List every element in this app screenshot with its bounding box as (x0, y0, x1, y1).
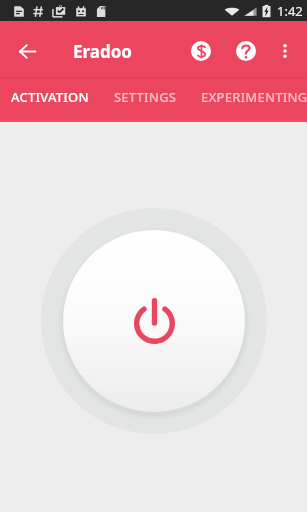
button[interactable]: SETTINGS (100, 77, 191, 117)
button[interactable]: EXPERIMENTING (191, 77, 307, 117)
button[interactable]: More options (268, 25, 301, 77)
staticText: Eradoo (73, 40, 132, 63)
staticText: SETTINGS (114, 88, 177, 106)
button[interactable]: Power (63, 230, 245, 412)
button[interactable]: Back (0, 25, 54, 77)
staticText: 1:42 (277, 2, 303, 20)
button[interactable]: ACTIVATION (0, 77, 100, 117)
staticText: ACTIVATION (11, 88, 89, 106)
button[interactable]: Help (223, 25, 268, 77)
staticText: EXPERIMENTING (201, 88, 307, 106)
button[interactable]: Donate (179, 25, 223, 77)
